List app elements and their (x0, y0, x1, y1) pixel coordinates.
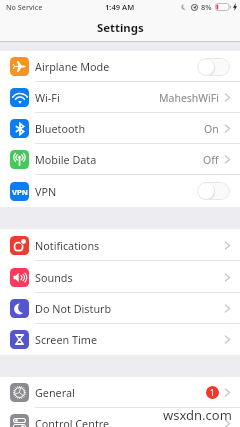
button[interactable]: Notifications (0, 229, 240, 261)
button[interactable]: Bluetooth (0, 113, 240, 144)
staticText: General (35, 385, 75, 400)
staticText: On (204, 122, 219, 136)
button[interactable]: Airplane Mode (0, 51, 240, 82)
staticText: MaheshWiFi (159, 91, 219, 105)
button[interactable]: Mobile Data (0, 144, 240, 175)
button[interactable]: General (0, 377, 240, 408)
button[interactable]: Control Centre (0, 408, 240, 427)
staticText: Off (203, 153, 219, 167)
staticText: Control Centre (35, 416, 110, 427)
staticText: Do Not Disturb (35, 301, 112, 316)
staticText: Bluetooth (35, 121, 86, 136)
button[interactable]: VPN switch (197, 182, 230, 200)
staticText: Sounds (35, 270, 73, 285)
staticText: 1 (210, 387, 215, 398)
staticText: Airplane Mode (35, 59, 110, 74)
staticText: VPN (35, 184, 57, 199)
staticText: 1:49 AM (105, 2, 135, 12)
staticText: No Service (6, 2, 43, 12)
staticText: VPN (12, 187, 28, 197)
button[interactable]: Do Not Disturb (0, 293, 240, 324)
staticText: Settings (97, 20, 144, 36)
staticText: Screen Time (35, 332, 97, 347)
staticText: Notifications (35, 238, 100, 253)
staticText: Mobile Data (35, 152, 97, 167)
button[interactable]: Airplane Mode switch (197, 58, 230, 76)
button[interactable]: Wi-Fi (0, 82, 240, 113)
staticText: wsxdn.com (163, 406, 232, 424)
staticText: Wi-Fi (35, 90, 60, 105)
button[interactable]: VPN (0, 175, 240, 207)
button[interactable]: Sounds (0, 261, 240, 293)
button[interactable]: Screen Time (0, 324, 240, 355)
staticText: 8% (201, 2, 212, 12)
